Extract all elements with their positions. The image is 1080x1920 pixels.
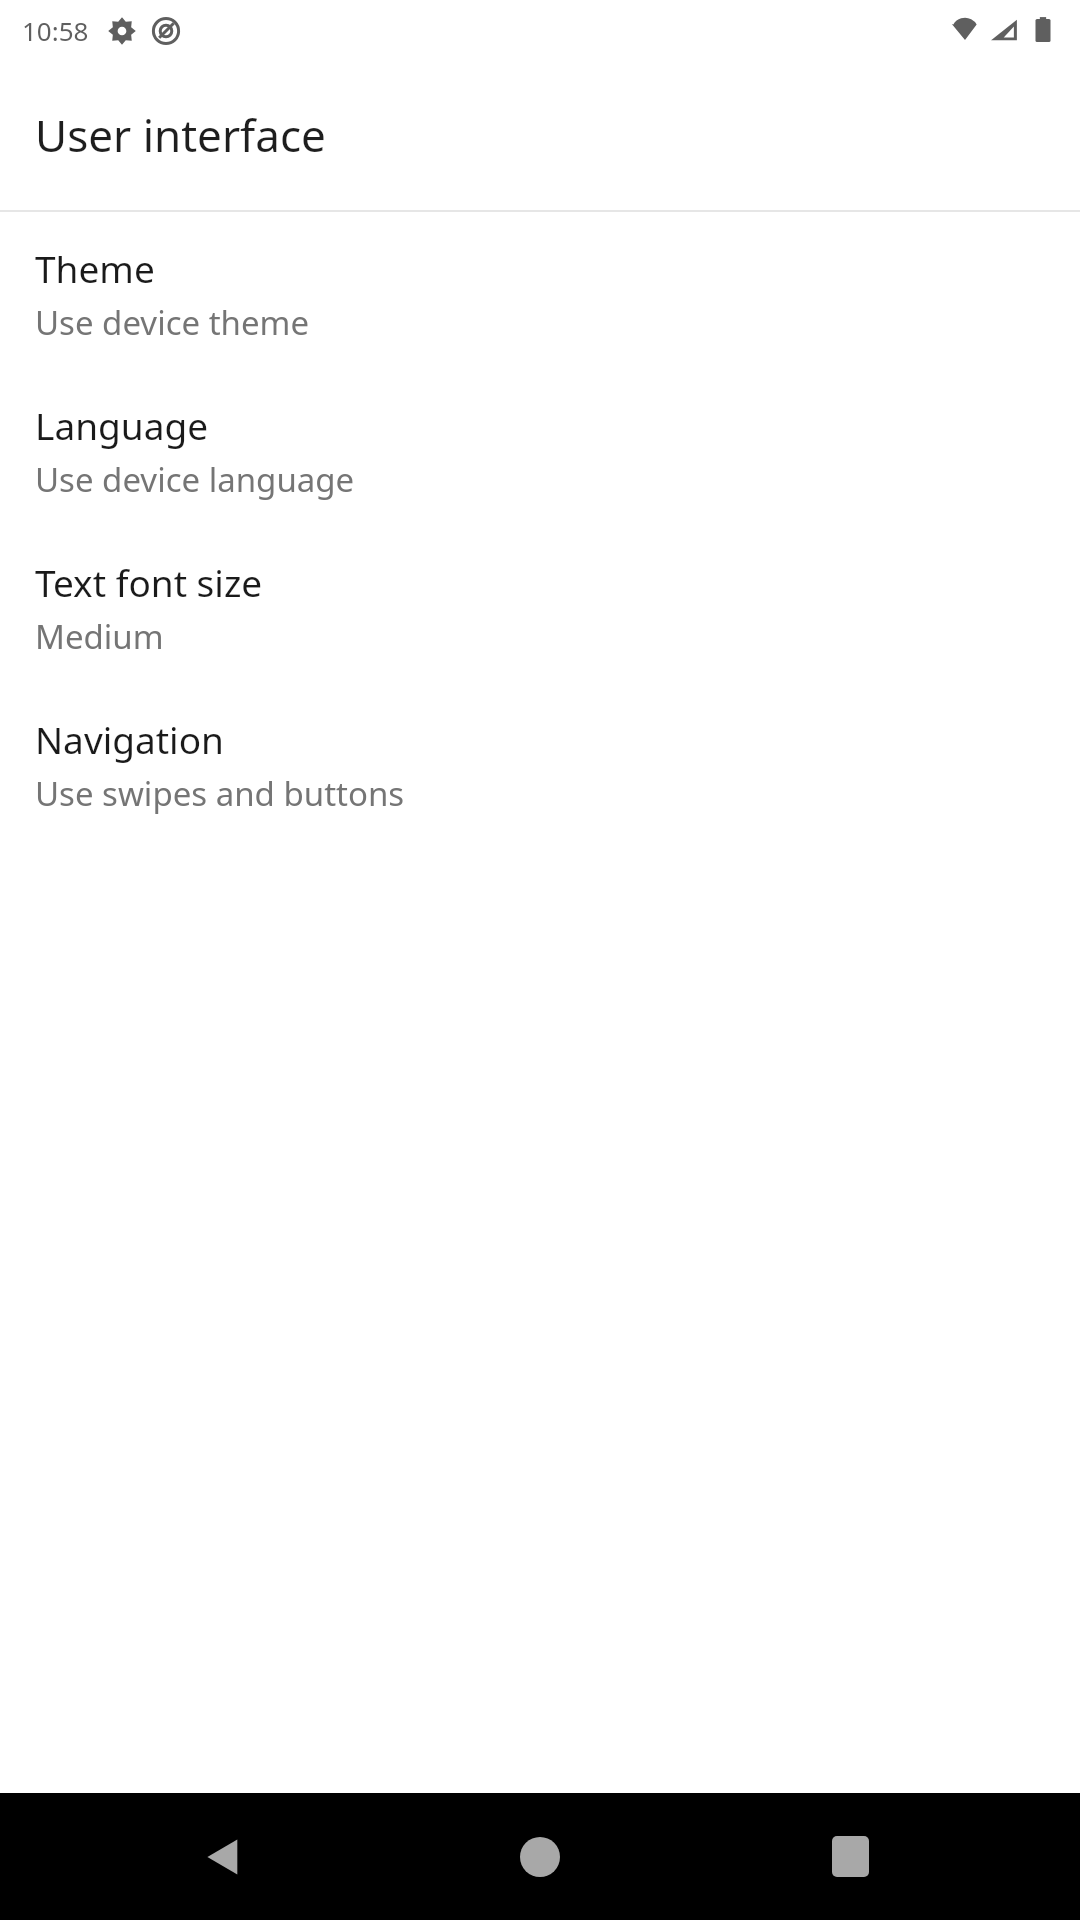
staticText: Text font size bbox=[35, 557, 263, 607]
staticText: User interface bbox=[35, 105, 326, 165]
staticText: Language bbox=[35, 400, 209, 450]
staticText: Medium bbox=[35, 614, 164, 659]
staticText: Theme bbox=[35, 243, 155, 293]
button[interactable]: Text font size bbox=[0, 545, 1080, 702]
button[interactable]: Home bbox=[470, 1793, 610, 1920]
button[interactable]: Theme bbox=[0, 231, 1080, 388]
staticText: Navigation bbox=[35, 714, 224, 764]
staticText: Use device theme bbox=[35, 300, 310, 345]
button[interactable]: Language bbox=[0, 388, 1080, 545]
staticText: 10:58 bbox=[22, 13, 89, 48]
button[interactable]: Recent apps bbox=[780, 1793, 920, 1920]
button[interactable]: Back bbox=[155, 1793, 295, 1920]
button[interactable]: Navigation bbox=[0, 702, 1080, 859]
staticText: Use swipes and buttons bbox=[35, 771, 405, 816]
staticText: Use device language bbox=[35, 457, 355, 502]
